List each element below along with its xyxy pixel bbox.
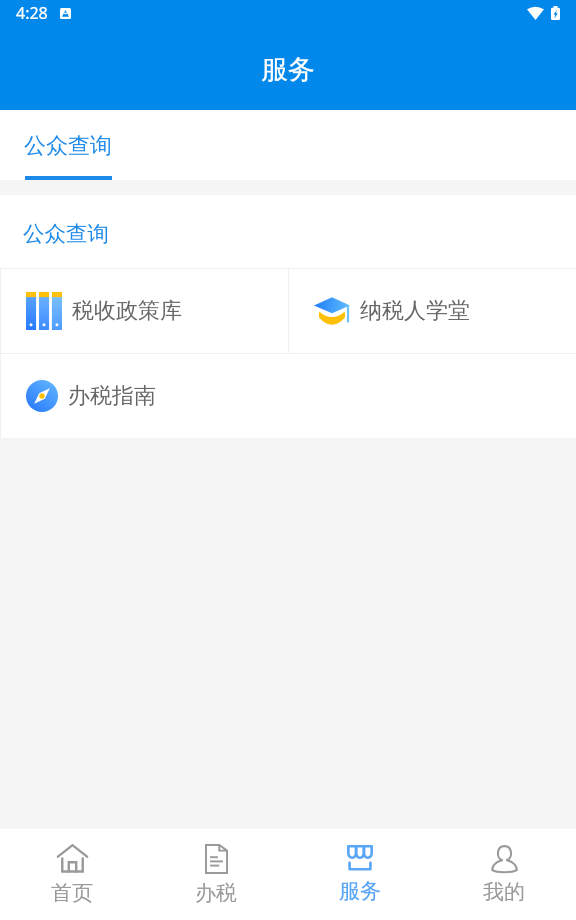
button[interactable]: 公众查询 bbox=[0, 110, 136, 180]
button[interactable]: 办税 bbox=[144, 829, 288, 920]
staticText: 4:28 bbox=[16, 2, 48, 24]
staticText: 纳税人学堂 bbox=[360, 297, 470, 325]
button[interactable]: 我的 bbox=[432, 829, 576, 920]
staticText: 税收政策库 bbox=[72, 297, 182, 325]
staticText: 服务 bbox=[339, 878, 381, 904]
staticText: 办税指南 bbox=[68, 382, 156, 410]
staticText: 办税 bbox=[195, 880, 237, 906]
button[interactable]: 办税指南 bbox=[1, 354, 288, 438]
staticText: 服务 bbox=[261, 53, 315, 87]
staticText: 我的 bbox=[483, 879, 525, 905]
button[interactable]: 首页 bbox=[0, 829, 144, 920]
staticText: 首页 bbox=[51, 880, 93, 906]
staticText: 公众查询 bbox=[24, 132, 112, 160]
button[interactable]: 纳税人学堂 bbox=[289, 269, 576, 353]
button[interactable]: 服务 bbox=[288, 829, 432, 920]
staticText: 公众查询 bbox=[23, 220, 109, 247]
button[interactable]: 税收政策库 bbox=[1, 269, 288, 353]
